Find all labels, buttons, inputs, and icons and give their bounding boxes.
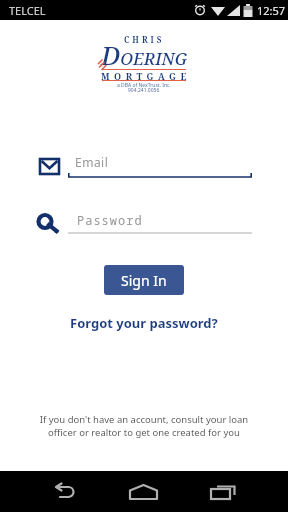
button[interactable] — [26, 471, 104, 512]
button[interactable] — [104, 471, 183, 512]
staticText: MORTGAGE — [101, 70, 191, 82]
button[interactable] — [183, 471, 262, 512]
button[interactable]: Email — [68, 154, 252, 178]
button[interactable]: Sign In — [104, 265, 184, 295]
button[interactable]: Forgot your password? — [70, 314, 218, 332]
staticText: If you don't have an account, consult yo… — [0, 413, 288, 439]
staticText: Sign In — [121, 271, 167, 290]
staticText: 12:57 — [257, 3, 286, 18]
staticText: DOERING — [101, 37, 188, 72]
staticText: Password — [77, 212, 143, 228]
staticText: Email — [75, 154, 109, 170]
staticText: 904.241.0056 — [128, 87, 160, 94]
staticText: TELCEL — [9, 3, 46, 18]
button[interactable]: Password — [68, 212, 252, 234]
staticText: a DBA of NexTrust, Inc. — [117, 82, 171, 89]
staticText: CHRIS — [124, 34, 165, 45]
